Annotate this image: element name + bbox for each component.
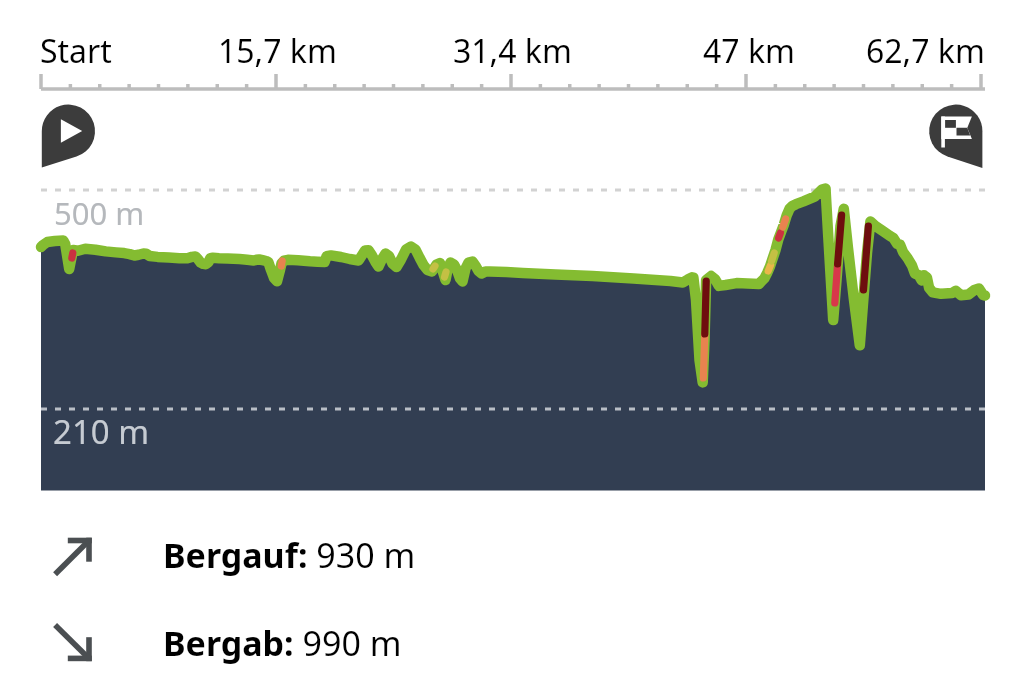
button[interactable]: Bergab: 990 m	[40, 607, 460, 673]
staticText: 15,7 km	[218, 29, 337, 73]
staticText: 47 km	[703, 29, 795, 73]
staticText: 31,4 km	[453, 29, 572, 73]
staticText: Bergauf: 930 m	[163, 532, 416, 578]
button[interactable]: Bergauf: 930 m	[40, 519, 460, 591]
button[interactable]: Elevation profile chart	[41, 175, 985, 491]
staticText: Bergab: 990 m	[163, 620, 402, 666]
button[interactable]: Finish of route	[929, 104, 983, 168]
staticText: 210 m	[53, 409, 150, 454]
staticText: Start	[40, 29, 112, 73]
staticText: 500 m	[54, 192, 145, 234]
staticText: 62,7 km	[866, 29, 985, 73]
button[interactable]: Start of route	[42, 104, 95, 168]
